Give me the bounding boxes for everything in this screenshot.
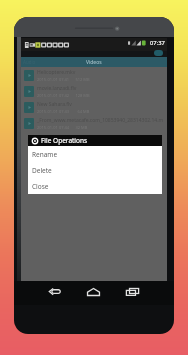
- staticText: Videos: [86, 59, 102, 66]
- staticText: New Sahara.flv: [37, 101, 72, 108]
- staticText: 2015-01-01 07:42 128 MB: [37, 93, 90, 98]
- button[interactable]: Recents: [123, 286, 141, 298]
- staticText: 2015-01-01 07:41 512 MB: [37, 77, 90, 82]
- staticText: Helicoptere.mkv: [37, 69, 76, 76]
- button[interactable]: Helicoptere.mkv: [21, 67, 167, 83]
- button[interactable]: New Sahara.flv: [21, 99, 167, 115]
- staticText: movie.lanzadi.flv: [37, 85, 77, 92]
- staticText: 07:37: [150, 39, 165, 47]
- button[interactable]: Overflow menu: [154, 50, 163, 56]
- button[interactable]: Back: [45, 286, 63, 298]
- staticText: Close: [32, 182, 49, 191]
- staticText: Delete: [32, 166, 52, 175]
- staticText: _From_www.metacafe.com_10853940_28314302…: [37, 117, 165, 124]
- staticText: Rename: [32, 150, 58, 159]
- button[interactable]: _From_www.metacafe.com_10853940_28314302…: [21, 115, 167, 131]
- button[interactable]: Close: [28, 178, 162, 194]
- staticText: File Operations: [41, 136, 88, 145]
- staticText: 2015-01-01 07:43 64 MB: [37, 109, 90, 114]
- staticText: 2015-01-01 07:44 32 MB: [37, 125, 88, 130]
- button[interactable]: movie.lanzadi.flv: [21, 83, 167, 99]
- button[interactable]: Home: [84, 286, 102, 298]
- button[interactable]: Delete: [28, 162, 162, 178]
- button[interactable]: Rename: [28, 146, 162, 162]
